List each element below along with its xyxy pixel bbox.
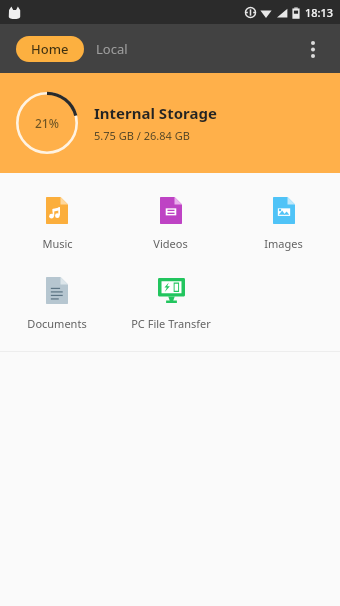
button[interactable]: Local: [84, 34, 140, 64]
button[interactable]: Documents: [0, 263, 114, 343]
staticText: Images: [264, 236, 303, 251]
staticText: 18:13: [305, 5, 334, 20]
staticText: Documents: [27, 316, 87, 331]
staticText: Home: [31, 40, 69, 58]
button[interactable]: Images: [227, 183, 340, 263]
staticText: Internal Storage: [94, 103, 217, 123]
staticText: 5.75 GB / 26.84 GB: [94, 128, 190, 143]
staticText: Local: [96, 40, 128, 58]
button[interactable]: 21%: [0, 73, 340, 173]
button[interactable]: Home: [16, 36, 84, 62]
staticText: Music: [42, 236, 73, 251]
staticText: PC File Transfer: [131, 316, 211, 331]
button[interactable]: More options: [294, 30, 332, 68]
staticText: Videos: [153, 236, 188, 251]
button[interactable]: Music: [0, 183, 114, 263]
button[interactable]: Videos: [114, 183, 227, 263]
button[interactable]: PC File Transfer: [114, 263, 227, 343]
staticText: 21%: [35, 115, 59, 131]
